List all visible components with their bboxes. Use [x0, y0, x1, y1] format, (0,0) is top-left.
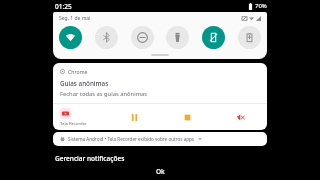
button[interactable]: Rotação automática [202, 26, 225, 49]
button[interactable]: Tela Recorder [53, 108, 107, 127]
button[interactable]: Ok [148, 164, 173, 179]
staticText: Guias anônimas [60, 79, 109, 88]
button[interactable]: Lanterna [166, 26, 189, 49]
staticText: Gerenciar notificações [55, 154, 125, 163]
staticText: Sistema Android • Tela Recorder exibido … [68, 136, 195, 142]
staticText: 70% [255, 2, 267, 10]
button[interactable]: Economia de bateria [238, 26, 261, 49]
staticText: Ok [156, 167, 165, 176]
button[interactable]: Silenciar [214, 104, 267, 130]
button[interactable]: Bluetooth [95, 26, 118, 49]
staticText: Seg, 1 de mai [59, 15, 91, 22]
staticText: Fechar todas as guias anônimas [60, 90, 148, 98]
staticText: Chrome [68, 68, 88, 75]
button[interactable]: Parar [161, 104, 214, 130]
button[interactable]: Não perturbe [131, 26, 154, 49]
button[interactable]: Wi-Fi [59, 26, 82, 49]
button[interactable]: Chrome [53, 63, 267, 130]
staticText: Tela Recorder [60, 121, 87, 127]
staticText: 01:25 [55, 2, 72, 11]
button[interactable]: Sistema Android • Tela Recorder exibido … [53, 132, 267, 146]
button[interactable]: Pausar [107, 104, 161, 130]
